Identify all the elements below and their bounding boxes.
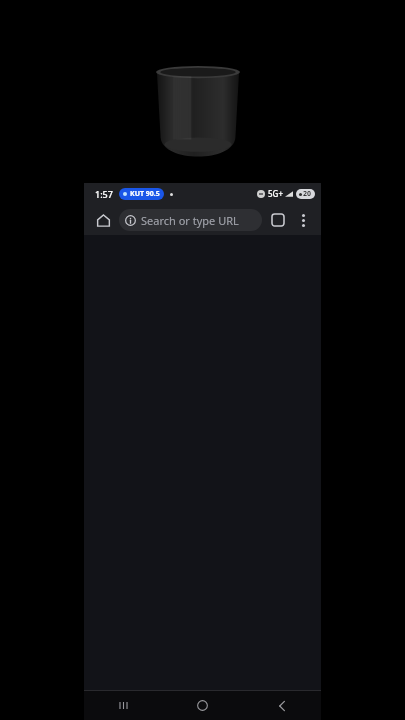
button[interactable]: Search or type URL [119, 209, 262, 231]
staticText: Search or type URL [141, 213, 239, 228]
staticText: 5G+ [268, 188, 283, 199]
button[interactable]: Switch tabs [266, 208, 290, 232]
button[interactable]: Recent apps [84, 691, 163, 720]
button[interactable]: Home [91, 208, 115, 232]
staticText: 20 [303, 189, 312, 199]
button[interactable]: More options [292, 209, 314, 231]
button[interactable]: Home [163, 691, 242, 720]
staticText: KUT 90.5 [130, 189, 160, 199]
button[interactable]: Back [242, 691, 321, 720]
staticText: 1:57 [95, 188, 113, 200]
